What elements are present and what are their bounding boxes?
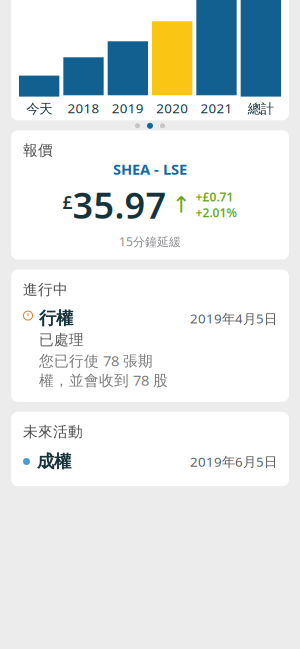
button[interactable]: 未來活動 — [11, 412, 289, 486]
staticText: +£0.71 — [195, 189, 233, 205]
staticText: 總計 — [248, 101, 274, 117]
staticText: 2019年4月5日 — [190, 310, 277, 327]
staticText: 成權 — [37, 451, 71, 472]
staticText: 未來活動 — [23, 423, 83, 441]
staticText: 報價 — [23, 141, 53, 159]
staticText: 2019年6月5日 — [190, 453, 277, 470]
staticText: 2021 — [200, 99, 232, 117]
staticText: 15分鐘延緩 — [119, 234, 181, 249]
staticText: +2.01% — [195, 205, 237, 221]
staticText: ↑ — [171, 192, 190, 218]
staticText: £ — [62, 191, 72, 214]
staticText: 您已行使 78 張期權，並會收到 78 股 — [39, 351, 168, 390]
staticText: 行權 — [39, 308, 73, 329]
staticText: 2019 — [112, 99, 144, 117]
button[interactable]: 進行中 — [11, 270, 289, 402]
staticText: SHEA - LSE — [113, 159, 187, 179]
staticText: 已處理 — [39, 331, 84, 349]
staticText: 35.97 — [72, 181, 166, 229]
staticText: 2020 — [156, 99, 188, 117]
staticText: 2018 — [67, 99, 99, 117]
staticText: 進行中 — [23, 281, 68, 299]
staticText: 今天 — [26, 101, 52, 117]
